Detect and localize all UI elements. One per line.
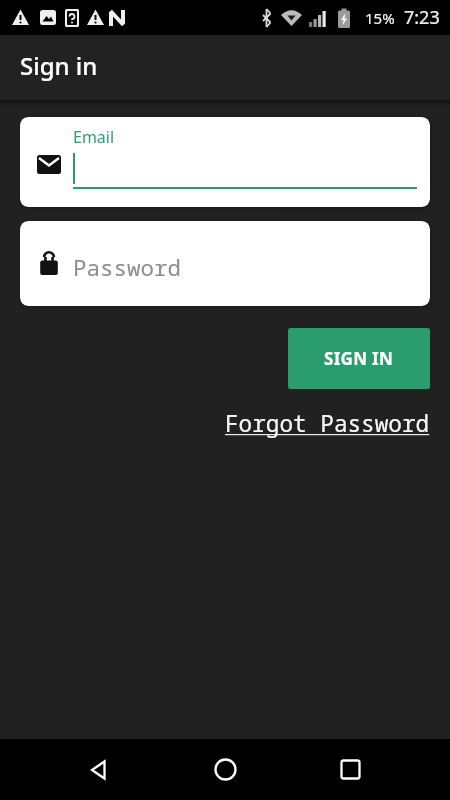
staticText: Password bbox=[73, 252, 182, 283]
button[interactable]: SIGN IN bbox=[288, 328, 430, 389]
button[interactable]: Forgot Password bbox=[225, 408, 430, 439]
staticText: Email bbox=[73, 126, 115, 148]
staticText: 15% bbox=[365, 8, 395, 28]
button[interactable]: Email bbox=[20, 117, 430, 207]
staticText: SIGN IN bbox=[324, 347, 394, 370]
staticText: Sign in bbox=[20, 49, 98, 82]
button[interactable]: Password bbox=[20, 221, 430, 306]
staticText: 7:23 bbox=[404, 5, 440, 30]
